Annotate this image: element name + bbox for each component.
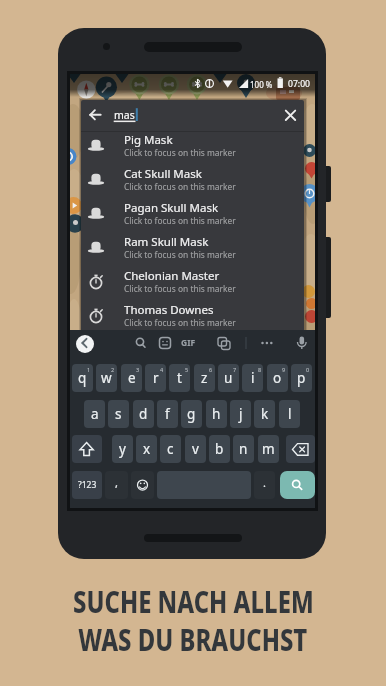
button[interactable] (254, 400, 275, 428)
staticText: Click to focus on this marker (124, 215, 236, 226)
staticText: 7 (233, 366, 237, 373)
button[interactable] (160, 435, 181, 463)
button[interactable] (81, 163, 304, 197)
staticText: WAS DU BRAUCHST (78, 618, 308, 654)
button[interactable] (280, 471, 315, 499)
staticText: f (165, 405, 170, 423)
button[interactable] (131, 471, 154, 499)
staticText: Ram Skull Mask (124, 234, 209, 249)
staticText: r (153, 369, 159, 387)
staticText: p (297, 369, 306, 387)
staticText: b (215, 440, 224, 458)
staticText: 9 (282, 366, 286, 373)
staticText: 1 (87, 366, 91, 373)
staticText: n (239, 440, 248, 458)
button[interactable] (267, 364, 288, 392)
button[interactable] (112, 435, 133, 463)
button[interactable] (230, 400, 251, 428)
button[interactable] (181, 400, 202, 428)
button[interactable] (81, 299, 304, 333)
staticText: Chelonian Master (124, 268, 220, 283)
button[interactable] (84, 400, 105, 428)
staticText: 4 (160, 366, 164, 373)
button[interactable] (81, 197, 304, 231)
button[interactable] (206, 400, 227, 428)
staticText: 0 (306, 366, 310, 373)
button[interactable] (81, 100, 121, 131)
button[interactable] (254, 471, 275, 499)
button[interactable] (279, 400, 300, 428)
staticText: Thomas Downes (124, 302, 214, 317)
button[interactable] (72, 435, 102, 463)
button[interactable] (136, 435, 157, 463)
staticText: v (192, 440, 199, 458)
staticText: Click to focus on this marker (124, 181, 236, 192)
button[interactable] (286, 435, 315, 463)
staticText: 07:00 (288, 78, 310, 90)
staticText: . (263, 475, 266, 490)
staticText: ?123 (78, 479, 97, 491)
button[interactable] (76, 335, 94, 353)
button[interactable] (157, 400, 178, 428)
staticText: x (143, 440, 151, 458)
staticText: i (251, 369, 255, 387)
staticText: u (224, 369, 233, 387)
staticText: Pagan Skull Mask (124, 200, 219, 215)
staticText: Click to focus on this marker (124, 249, 236, 260)
staticText: y (119, 440, 126, 458)
button[interactable] (81, 129, 304, 163)
staticText: Pig Mask (124, 132, 173, 147)
button[interactable] (105, 471, 128, 499)
staticText: h (212, 405, 221, 423)
staticText: z (201, 369, 208, 387)
button[interactable] (209, 435, 230, 463)
staticText: , (115, 475, 118, 490)
staticText: o (273, 369, 282, 387)
staticText: Click to focus on this marker (124, 147, 236, 158)
staticText: GIF (181, 337, 196, 349)
staticText: m (262, 440, 275, 458)
staticText: Click to focus on this marker (124, 317, 236, 328)
button[interactable] (169, 364, 190, 392)
staticText: 2 (111, 366, 115, 373)
staticText: mas (114, 108, 135, 122)
staticText: 5 (185, 366, 189, 373)
button[interactable] (145, 364, 166, 392)
button[interactable] (121, 364, 142, 392)
button[interactable] (291, 364, 312, 392)
button[interactable] (133, 400, 154, 428)
staticText: Click to focus on this marker (124, 283, 236, 294)
button[interactable] (108, 400, 129, 428)
staticText: q (78, 369, 87, 387)
staticText: 8 (258, 366, 262, 373)
staticText: 100 % (250, 79, 273, 90)
staticText: t (177, 369, 182, 387)
staticText: k (261, 405, 269, 423)
button[interactable] (218, 364, 239, 392)
staticText: c (167, 440, 174, 458)
staticText: 6 (209, 366, 213, 373)
staticText: Cat Skull Mask (124, 166, 202, 181)
button[interactable] (72, 471, 102, 499)
staticText: 3 (136, 366, 140, 373)
button[interactable] (96, 364, 117, 392)
button[interactable] (194, 364, 215, 392)
staticText: g (187, 405, 196, 423)
staticText: s (115, 405, 122, 423)
staticText: d (139, 405, 148, 423)
staticText: SUCHE NACH ALLEM (73, 580, 314, 616)
staticText: w (101, 369, 112, 387)
staticText: e (128, 369, 136, 387)
button[interactable] (81, 265, 304, 299)
button[interactable] (233, 435, 254, 463)
button[interactable] (258, 435, 279, 463)
staticText: j (239, 405, 243, 423)
staticText: l (288, 405, 292, 423)
button[interactable] (185, 435, 206, 463)
button[interactable] (72, 364, 93, 392)
staticText: a (91, 405, 99, 423)
button[interactable] (81, 231, 304, 265)
button[interactable] (242, 364, 263, 392)
